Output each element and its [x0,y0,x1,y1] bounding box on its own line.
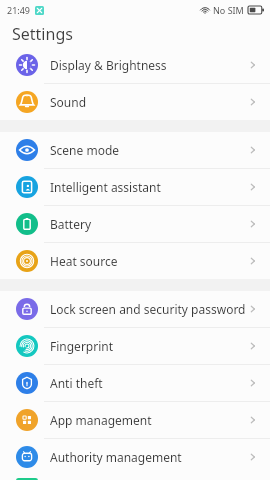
staticText: Lock screen and security password [50,301,248,317]
button[interactable]: Intelligent assistant [0,169,270,205]
staticText: Heat source [50,253,248,269]
button[interactable]: Fingerprint [0,328,270,364]
button[interactable]: Battery [0,206,270,242]
staticText: Fingerprint [50,338,248,354]
staticText: Scene mode [50,142,248,158]
staticText: No SIM [213,4,244,16]
button[interactable]: Authority management [0,439,270,475]
button[interactable]: Sound [0,84,270,120]
staticText: Authority management [50,449,248,465]
staticText: Settings [12,23,73,45]
button[interactable]: Lock screen and security password [0,291,270,327]
staticText: Sound [50,94,248,110]
button[interactable]: Display & Brightness [0,47,270,83]
staticText: Battery [50,216,248,232]
staticText: Intelligent assistant [50,179,248,195]
button[interactable]: Heat source [0,243,270,279]
button[interactable]: Scene mode [0,132,270,168]
button[interactable]: App management [0,402,270,438]
staticText: 21:49 [7,4,31,16]
staticText: App management [50,412,248,428]
staticText: Anti theft [50,375,248,391]
button[interactable]: Anti theft [0,365,270,401]
staticText: Display & Brightness [50,57,248,73]
